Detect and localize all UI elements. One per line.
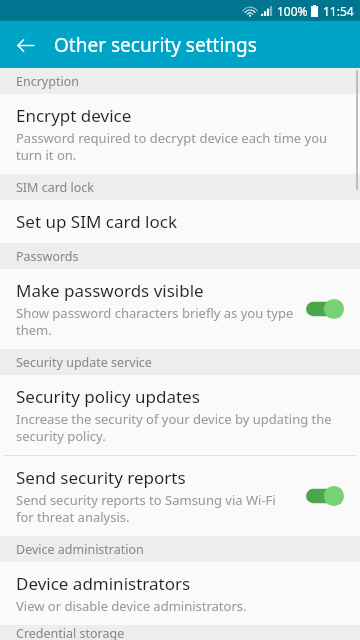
staticText: Passwords xyxy=(16,248,79,265)
staticText: Increase the security of your device by … xyxy=(16,410,346,445)
staticText: Password required to decrypt device each… xyxy=(16,129,346,164)
button[interactable]: Toggle xyxy=(306,484,346,508)
button[interactable]: Toggle xyxy=(306,297,346,321)
staticText: Encryption xyxy=(16,73,79,90)
button[interactable]: Send security reports xyxy=(0,456,360,536)
staticText: SIM card lock xyxy=(16,179,95,196)
staticText: Security update service xyxy=(16,354,152,371)
staticText: Show password characters briefly as you … xyxy=(16,304,296,339)
button[interactable]: Device administrators xyxy=(0,562,360,625)
staticText: Device administrators xyxy=(16,572,191,595)
staticText: Make passwords visible xyxy=(16,279,204,302)
button[interactable]: Back xyxy=(8,28,42,62)
button[interactable]: Make passwords visible xyxy=(0,269,360,349)
staticText: View or disable device administrators. xyxy=(16,597,247,615)
button[interactable]: Security policy updates xyxy=(0,375,360,455)
staticText: Send security reports to Samsung via Wi-… xyxy=(16,491,296,526)
staticText: Device administration xyxy=(16,541,144,558)
staticText: Credential storage xyxy=(16,625,125,640)
staticText: 100% xyxy=(277,3,308,19)
staticText: Encrypt device xyxy=(16,104,132,127)
button[interactable]: Encrypt device xyxy=(0,94,360,174)
button[interactable]: Set up SIM card lock xyxy=(0,200,360,243)
staticText: Other security settings xyxy=(54,32,257,58)
staticText: 11:54 xyxy=(323,3,354,19)
staticText: Send security reports xyxy=(16,466,186,489)
staticText: Set up SIM card lock xyxy=(16,210,177,233)
staticText: Security policy updates xyxy=(16,385,200,408)
